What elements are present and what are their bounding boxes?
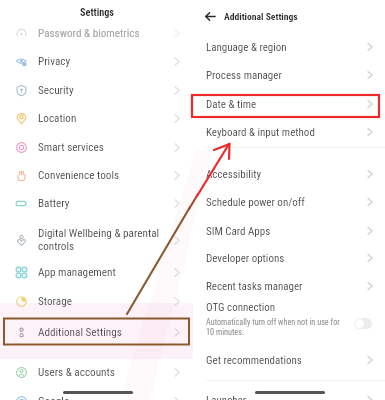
staticText: Battery xyxy=(38,197,70,210)
staticText: Language & region xyxy=(206,41,363,54)
button[interactable]: Users & accounts xyxy=(0,358,193,386)
staticText: Location xyxy=(38,112,77,125)
button[interactable]: Convenience tools xyxy=(0,161,193,189)
staticText: Developer options xyxy=(206,252,363,265)
button[interactable]: Schedule power on/off xyxy=(193,188,385,216)
button[interactable]: Recent tasks manager xyxy=(193,272,385,300)
button[interactable]: Additional Settings xyxy=(0,318,193,346)
button[interactable]: Process manager xyxy=(193,61,385,89)
staticText: Security xyxy=(38,84,74,97)
staticText: Automatically turn off when not in use f… xyxy=(206,317,340,337)
staticText: OTG connection xyxy=(206,301,276,314)
staticText: Launcher xyxy=(206,394,363,400)
staticText: Convenience tools xyxy=(38,169,120,182)
button[interactable]: Password & biometrics xyxy=(0,19,193,47)
button[interactable]: Digital Wellbeing & parental xyxy=(0,220,193,260)
staticText: Accessibility xyxy=(206,168,363,181)
button[interactable]: Google xyxy=(0,387,193,400)
staticText: Recent tasks manager xyxy=(206,280,363,293)
staticText: SIM Card Apps xyxy=(206,225,363,238)
staticText: Additional Settings xyxy=(38,326,122,339)
staticText: Additional Settings xyxy=(224,11,298,22)
button[interactable]: Get recommendations xyxy=(193,346,385,374)
button[interactable]: Keyboard & input method xyxy=(193,118,385,146)
button[interactable]: Language & region xyxy=(193,33,385,61)
staticText: Storage xyxy=(38,295,72,308)
button[interactable]: Back xyxy=(205,11,216,22)
button[interactable]: Launcher xyxy=(193,386,385,400)
staticText: Google xyxy=(38,395,70,400)
staticText: Smart services xyxy=(38,141,104,154)
button[interactable]: Location xyxy=(0,104,193,132)
button[interactable]: Smart services xyxy=(0,133,193,161)
staticText: controls xyxy=(38,240,75,253)
staticText: Users & accounts xyxy=(38,366,115,379)
button[interactable]: Battery xyxy=(0,189,193,217)
button[interactable]: OTG connection xyxy=(193,301,385,345)
staticText: Process manager xyxy=(206,69,363,82)
staticText: Password & biometrics xyxy=(38,27,140,40)
other: OTG connection toggle xyxy=(354,318,372,329)
button[interactable]: Accessibility xyxy=(193,160,385,188)
staticText: Settings xyxy=(80,7,114,19)
button[interactable]: SIM Card Apps xyxy=(193,217,385,245)
button[interactable]: Privacy xyxy=(0,47,193,75)
staticText: Keyboard & input method xyxy=(206,126,363,139)
staticText: App management xyxy=(38,266,116,279)
staticText: Get recommendations xyxy=(206,354,363,367)
button[interactable]: App management xyxy=(0,258,193,286)
button[interactable]: Developer options xyxy=(193,244,385,272)
button[interactable]: Security xyxy=(0,76,193,104)
staticText: Schedule power on/off xyxy=(206,196,363,209)
staticText: Digital Wellbeing & parental xyxy=(38,227,160,240)
staticText: Privacy xyxy=(38,55,71,68)
button[interactable]: Storage xyxy=(0,287,193,315)
button[interactable]: Date & time xyxy=(193,90,385,118)
staticText: Date & time xyxy=(206,98,363,111)
